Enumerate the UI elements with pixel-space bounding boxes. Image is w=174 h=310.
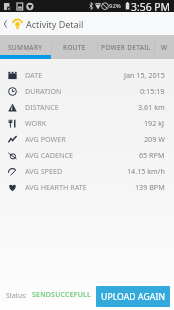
button[interactable]: Back	[0, 12, 9, 35]
staticText: 3.61 km	[138, 102, 165, 112]
button[interactable]: AVG CADENCE	[0, 147, 174, 163]
button[interactable]: AVG HEARTH RATE	[0, 179, 174, 195]
staticText: 92%	[109, 2, 121, 10]
button[interactable]: DATE	[0, 67, 174, 83]
staticText: AVG POWER	[25, 134, 66, 144]
staticText: AVG HEARTH RATE	[25, 182, 87, 192]
staticText: SENDSUCCEFULL	[32, 290, 91, 300]
staticText: DURATION	[25, 86, 62, 96]
staticText: 14.15 km/h	[127, 166, 165, 176]
button[interactable]: ROUTE	[52, 35, 97, 59]
staticText: Status:	[6, 291, 27, 300]
staticText: DATE	[25, 70, 43, 80]
staticText: UPLOAD AGAIN	[101, 291, 166, 303]
staticText: W	[161, 43, 168, 52]
button[interactable]: DISTANCE	[0, 99, 174, 115]
staticText: 65 RPM	[139, 150, 165, 160]
button[interactable]: DURATION	[0, 83, 174, 99]
button[interactable]: UPLOAD AGAIN	[96, 286, 170, 307]
staticText: DISTANCE	[25, 102, 59, 112]
staticText: 0:15:19	[140, 86, 165, 96]
button[interactable]: POWER DETAIL	[98, 35, 154, 59]
staticText: 3:56 PM	[131, 0, 171, 12]
button[interactable]: AVG SPEED	[0, 163, 174, 179]
button[interactable]: AVG POWER	[0, 131, 174, 147]
button[interactable]: WORK	[0, 115, 174, 131]
button[interactable]: W	[155, 35, 174, 59]
staticText: ROUTE	[63, 43, 86, 52]
staticText: 139 BPM	[135, 182, 165, 192]
staticText: POWER DETAIL	[101, 43, 151, 52]
staticText: AVG SPEED	[25, 166, 63, 176]
staticText: WORK	[25, 118, 47, 128]
button[interactable]: SUMMARY	[0, 35, 51, 59]
staticText: Activity Detail	[26, 18, 84, 30]
staticText: SUMMARY	[8, 43, 43, 52]
staticText: 209 W	[144, 134, 165, 144]
staticText: AVG CADENCE	[25, 150, 74, 160]
staticText: 192 kJ	[144, 118, 165, 128]
staticText: Jan 15, 2015	[124, 70, 165, 80]
